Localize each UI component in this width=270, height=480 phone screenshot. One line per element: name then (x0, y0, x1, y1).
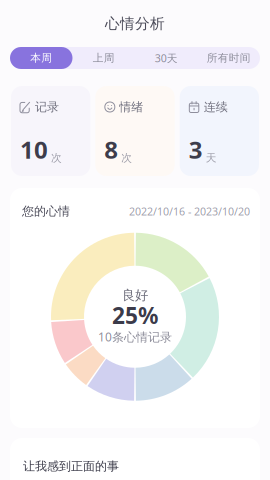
staticText: 情绪 (119, 100, 143, 114)
staticText: 10 (20, 134, 48, 165)
staticText: 让我感到正面的事 (23, 459, 119, 474)
staticText: 心情分析 (105, 14, 165, 32)
staticText: 8 (104, 134, 118, 165)
staticText: 天 (206, 151, 217, 164)
staticText: 3 (189, 134, 203, 165)
button[interactable]: 记录 (11, 86, 90, 176)
staticText: 2022/10/16 - 2023/10/20 (129, 204, 250, 218)
staticText: 记录 (35, 100, 59, 114)
button[interactable]: 本周 (10, 47, 72, 69)
staticText: 次 (121, 151, 132, 164)
button[interactable]: 连续 (180, 86, 259, 176)
staticText: 良好 (122, 287, 148, 303)
staticText: 次 (51, 151, 62, 164)
button[interactable]: 上周 (72, 47, 135, 69)
staticText: 所有时间 (207, 51, 251, 64)
staticText: 30天 (155, 51, 178, 65)
staticText: 您的心情 (22, 204, 70, 219)
staticText: 本周 (30, 51, 52, 64)
staticText: 25% (112, 300, 158, 330)
staticText: 上周 (93, 51, 115, 64)
button[interactable]: 所有时间 (197, 47, 260, 69)
staticText: 10条心情记录 (98, 329, 172, 345)
button[interactable]: 情绪 (95, 86, 175, 176)
button[interactable]: 30天 (135, 47, 197, 69)
staticText: 连续 (204, 100, 228, 114)
